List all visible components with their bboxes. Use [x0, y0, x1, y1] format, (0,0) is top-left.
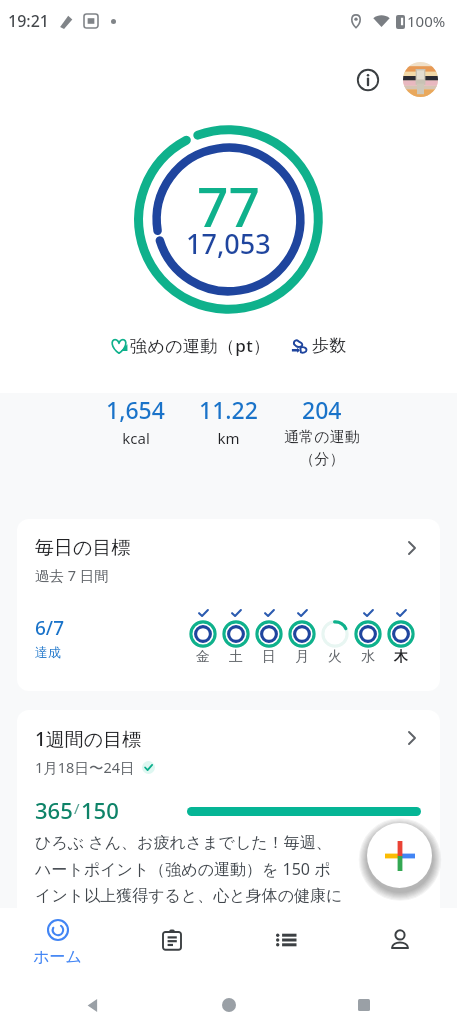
staticText: ひろぶ さん、お疲れさまでした！毎週、 ハートポイント（強めの運動）を 150 …: [35, 831, 343, 906]
staticText: 19:21: [8, 10, 49, 32]
button[interactable]: 1,654: [89, 394, 182, 448]
staticText: 過去 7 日間: [35, 565, 109, 585]
staticText: 月: [295, 648, 309, 666]
button[interactable]: Add: [367, 823, 432, 888]
staticText: 水: [361, 648, 375, 666]
button[interactable]: Journal: [115, 908, 229, 985]
staticText: 11.22: [199, 394, 258, 425]
staticText: 日: [262, 648, 276, 666]
button[interactable]: 歩数: [288, 331, 350, 360]
staticText: 1月18日〜24日: [35, 757, 135, 777]
staticText: kcal: [122, 428, 150, 448]
staticText: 150: [81, 795, 119, 819]
button[interactable]: Profile: [403, 62, 438, 97]
staticText: 土: [229, 648, 243, 666]
staticText: 強めの運動（pt）: [130, 334, 271, 357]
staticText: km: [217, 428, 240, 448]
button[interactable]: ホーム: [0, 908, 115, 985]
button[interactable]: Browse: [229, 908, 343, 985]
staticText: 1週間の目標: [35, 726, 142, 752]
staticText: 17,053: [186, 225, 271, 262]
staticText: 365: [35, 795, 73, 819]
button[interactable]: 毎日の目標: [17, 519, 440, 691]
button[interactable]: 強めの運動（pt）: [107, 330, 274, 361]
button[interactable]: Info: [346, 58, 389, 101]
staticText: 金: [196, 648, 210, 666]
staticText: 通常の運動 （分）: [284, 428, 360, 469]
staticText: 204: [302, 394, 342, 425]
staticText: 100%: [407, 11, 446, 31]
staticText: 毎日の目標: [35, 536, 131, 560]
staticText: 歩数: [312, 335, 347, 356]
staticText: 6/7: [35, 615, 65, 641]
staticText: 木: [394, 648, 408, 666]
staticText: 1,654: [106, 394, 165, 425]
staticText: /: [74, 798, 80, 818]
button[interactable]: Profile: [343, 908, 457, 985]
staticText: ホーム: [33, 947, 82, 967]
button[interactable]: 1週間の目標: [17, 710, 440, 940]
staticText: 77: [197, 168, 260, 243]
button[interactable]: 204: [275, 394, 368, 469]
staticText: 火: [328, 648, 342, 666]
staticText: 達成: [35, 644, 61, 660]
button[interactable]: 11.22: [182, 394, 275, 448]
